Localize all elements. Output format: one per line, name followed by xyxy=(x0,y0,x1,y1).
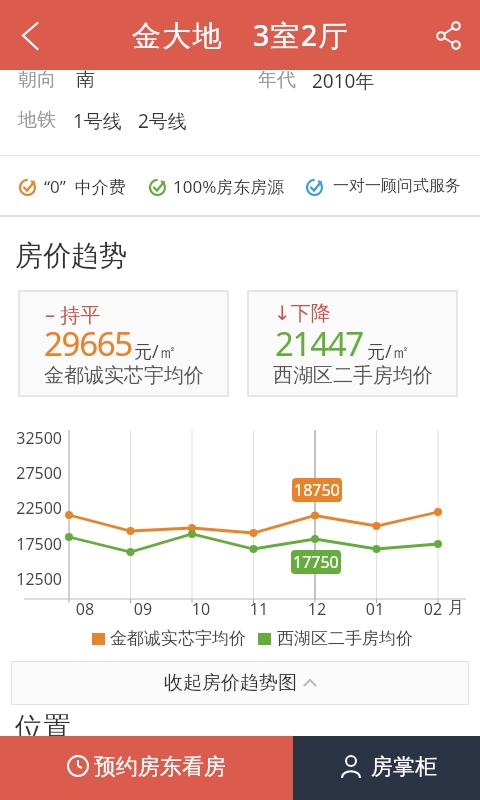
staticText: 金大地 3室2厅 xyxy=(132,15,349,55)
staticText: 收起房价趋势图 xyxy=(164,671,297,695)
button[interactable] xyxy=(14,13,54,57)
button[interactable]: ↓下降 xyxy=(247,290,458,397)
staticText: 金都诚实芯宇均价 xyxy=(110,628,246,649)
staticText: ↓下降 xyxy=(274,301,331,326)
staticText: 朝向 xyxy=(18,68,56,92)
staticText: 元/㎡ xyxy=(367,339,410,364)
staticText: 12 xyxy=(297,598,337,620)
staticText: 01 xyxy=(355,598,395,620)
staticText: 年代 xyxy=(258,68,296,92)
staticText: 地铁 xyxy=(18,108,56,132)
staticText: 10 xyxy=(181,598,221,620)
staticText: 22500 xyxy=(0,497,62,519)
staticText: 08 xyxy=(65,598,105,620)
staticText: 11 xyxy=(239,598,279,620)
staticText: – 持平 xyxy=(45,301,101,328)
staticText: 金都诚实芯宇均价 xyxy=(44,363,204,388)
staticText: 32500 xyxy=(0,427,62,449)
staticText: 09 xyxy=(123,598,163,620)
staticText: 02 xyxy=(413,598,453,620)
staticText: 12500 xyxy=(0,568,62,590)
staticText: 17750 xyxy=(293,551,339,573)
staticText: 2号线 xyxy=(138,108,187,134)
button[interactable]: 收起房价趋势图 xyxy=(11,661,469,705)
staticText: 17500 xyxy=(0,533,62,555)
button[interactable] xyxy=(428,14,468,54)
staticText: 18750 xyxy=(294,479,340,501)
staticText: 29665 xyxy=(44,321,132,366)
button[interactable]: – 持平 xyxy=(18,290,229,397)
staticText: 房价趋势 xyxy=(15,238,127,273)
staticText: 元/㎡ xyxy=(134,339,177,364)
staticText: 月 xyxy=(448,598,464,618)
staticText: 房掌柜 xyxy=(371,753,437,781)
staticText: 西湖区二手房均价 xyxy=(273,363,433,388)
button[interactable]: 房掌柜 xyxy=(293,736,480,800)
staticText: 1号线 xyxy=(73,108,122,134)
staticText: 100%房东房源 xyxy=(173,175,285,198)
staticText: 一对一顾问式服务 xyxy=(333,176,461,196)
staticText: 27500 xyxy=(0,462,62,484)
staticText: 预约房东看房 xyxy=(94,753,226,781)
staticText: 西湖区二手房均价 xyxy=(277,628,413,649)
staticText: “0” 中介费 xyxy=(44,175,126,198)
staticText: 21447 xyxy=(275,321,363,366)
staticText: 南 xyxy=(76,68,95,92)
button[interactable]: 预约房东看房 xyxy=(0,736,293,800)
staticText: 2010年 xyxy=(312,68,375,94)
staticText: 位置 xyxy=(15,710,71,745)
